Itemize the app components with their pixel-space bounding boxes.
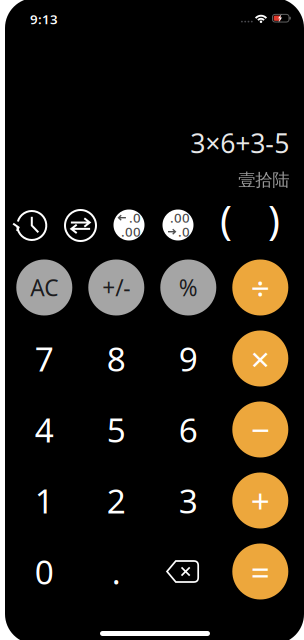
button[interactable]: % bbox=[160, 259, 216, 315]
button[interactable]: Delete bbox=[154, 543, 210, 599]
button[interactable]: = bbox=[232, 543, 288, 599]
staticText: 4 bbox=[35, 407, 54, 452]
button[interactable]: 0 bbox=[16, 543, 72, 599]
staticText: +/- bbox=[102, 272, 130, 302]
staticText: 1 bbox=[35, 478, 54, 523]
staticText: % bbox=[179, 272, 198, 302]
staticText: 8 bbox=[107, 336, 126, 381]
staticText: + bbox=[251, 478, 270, 523]
staticText: 7 bbox=[35, 336, 54, 381]
button[interactable]: . bbox=[88, 543, 144, 599]
staticText: 3×6+3-5 bbox=[190, 125, 289, 161]
staticText: .0 bbox=[129, 209, 141, 226]
staticText: 5 bbox=[107, 407, 126, 452]
staticText: = bbox=[251, 549, 270, 594]
button[interactable]: 3 bbox=[160, 472, 216, 528]
staticText: − bbox=[251, 407, 270, 452]
staticText: 6 bbox=[179, 407, 198, 452]
button[interactable]: − bbox=[232, 401, 288, 457]
button[interactable]: ( bbox=[210, 204, 241, 235]
staticText: 0 bbox=[35, 549, 54, 594]
staticText: .00 bbox=[121, 223, 141, 240]
staticText: ) bbox=[268, 193, 280, 246]
button[interactable]: ) bbox=[258, 204, 289, 235]
staticText: 9:13 bbox=[30, 10, 58, 28]
staticText: AC bbox=[30, 272, 58, 302]
staticText: 2 bbox=[107, 478, 126, 523]
button[interactable]: ÷ bbox=[232, 259, 288, 315]
button[interactable]: 4 bbox=[16, 401, 72, 457]
button[interactable]: 9 bbox=[160, 330, 216, 386]
button[interactable]: Fewer decimal places bbox=[113, 209, 144, 240]
button[interactable]: AC bbox=[16, 259, 72, 315]
staticText: . bbox=[112, 549, 121, 594]
button[interactable]: × bbox=[232, 330, 288, 386]
button[interactable]: 6 bbox=[160, 401, 216, 457]
button[interactable]: 2 bbox=[88, 472, 144, 528]
staticText: ( bbox=[220, 193, 232, 246]
button[interactable]: Convert units bbox=[65, 210, 96, 241]
staticText: ÷ bbox=[251, 265, 270, 310]
staticText: .00 bbox=[170, 209, 190, 226]
staticText: 壹拾陆 bbox=[238, 169, 289, 191]
button[interactable]: + bbox=[232, 472, 288, 528]
button[interactable]: 5 bbox=[88, 401, 144, 457]
button[interactable]: More decimal places bbox=[162, 209, 193, 240]
staticText: 9 bbox=[179, 336, 198, 381]
button[interactable]: +/- bbox=[88, 259, 144, 315]
staticText: .0 bbox=[178, 223, 190, 240]
button[interactable]: 8 bbox=[88, 330, 144, 386]
button[interactable]: 1 bbox=[16, 472, 72, 528]
staticText: 3 bbox=[179, 478, 198, 523]
button[interactable]: 7 bbox=[16, 330, 72, 386]
button[interactable]: History bbox=[16, 210, 47, 241]
staticText: × bbox=[251, 336, 270, 381]
